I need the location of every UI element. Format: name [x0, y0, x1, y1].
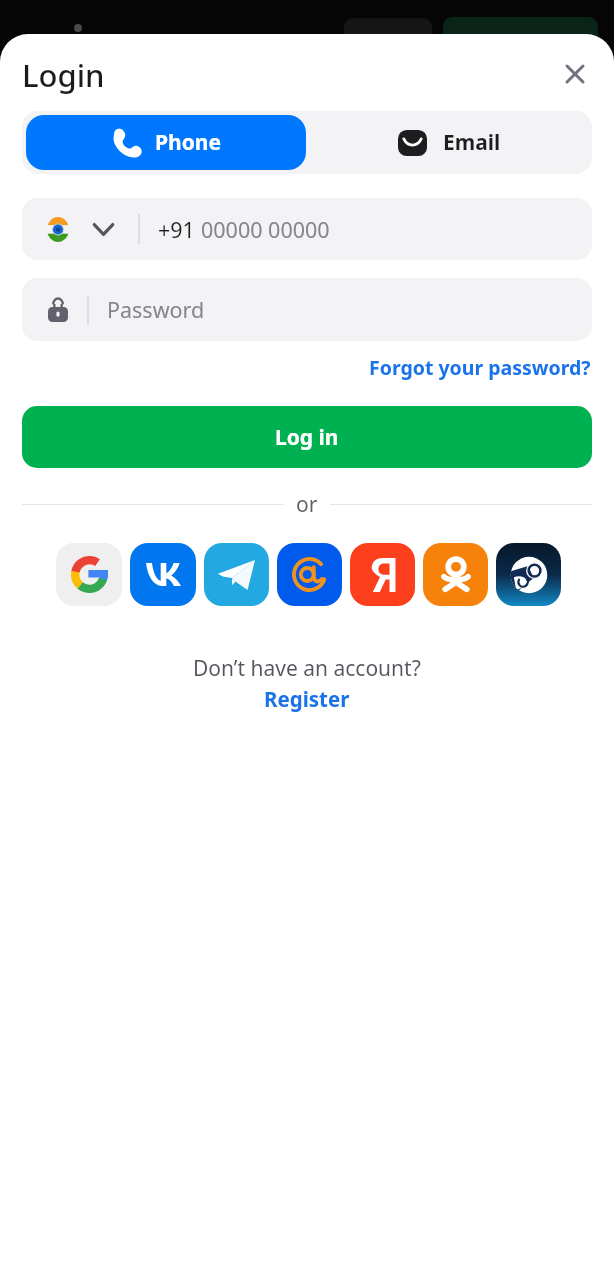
button[interactable]: Sign in with Telegram	[204, 543, 269, 606]
staticText: Don’t have an account?	[193, 654, 421, 683]
staticText: or	[296, 490, 318, 519]
button[interactable]: Register	[258, 683, 356, 715]
staticText: Log in	[275, 423, 339, 452]
button[interactable]: Password	[22, 278, 592, 341]
button[interactable]: Phone	[26, 115, 306, 170]
staticText: Phone	[155, 128, 222, 157]
button[interactable]: Sign in with Yandex	[350, 543, 415, 606]
button[interactable]: Sign in with Google	[56, 543, 122, 606]
button[interactable]: Forgot your password?	[365, 350, 595, 385]
button[interactable]: Log in	[22, 406, 592, 468]
button[interactable]: Sign in with Odnoklassniki	[423, 543, 488, 606]
staticText: +91	[158, 215, 195, 244]
button[interactable]: Email	[307, 111, 592, 174]
button[interactable]: Sign in with VK	[130, 543, 196, 606]
staticText: Forgot your password?	[369, 354, 591, 381]
button[interactable]: +91	[22, 198, 592, 260]
button[interactable]: Sign in with Steam	[496, 543, 561, 606]
button[interactable]: Sign in with Mail.ru	[277, 543, 342, 606]
staticText: Email	[443, 128, 501, 157]
staticText: Password	[107, 295, 205, 324]
staticText: Login	[22, 54, 105, 96]
staticText: 00000 00000	[201, 215, 330, 244]
staticText: Register	[264, 685, 350, 713]
button[interactable]: Close	[556, 55, 594, 93]
